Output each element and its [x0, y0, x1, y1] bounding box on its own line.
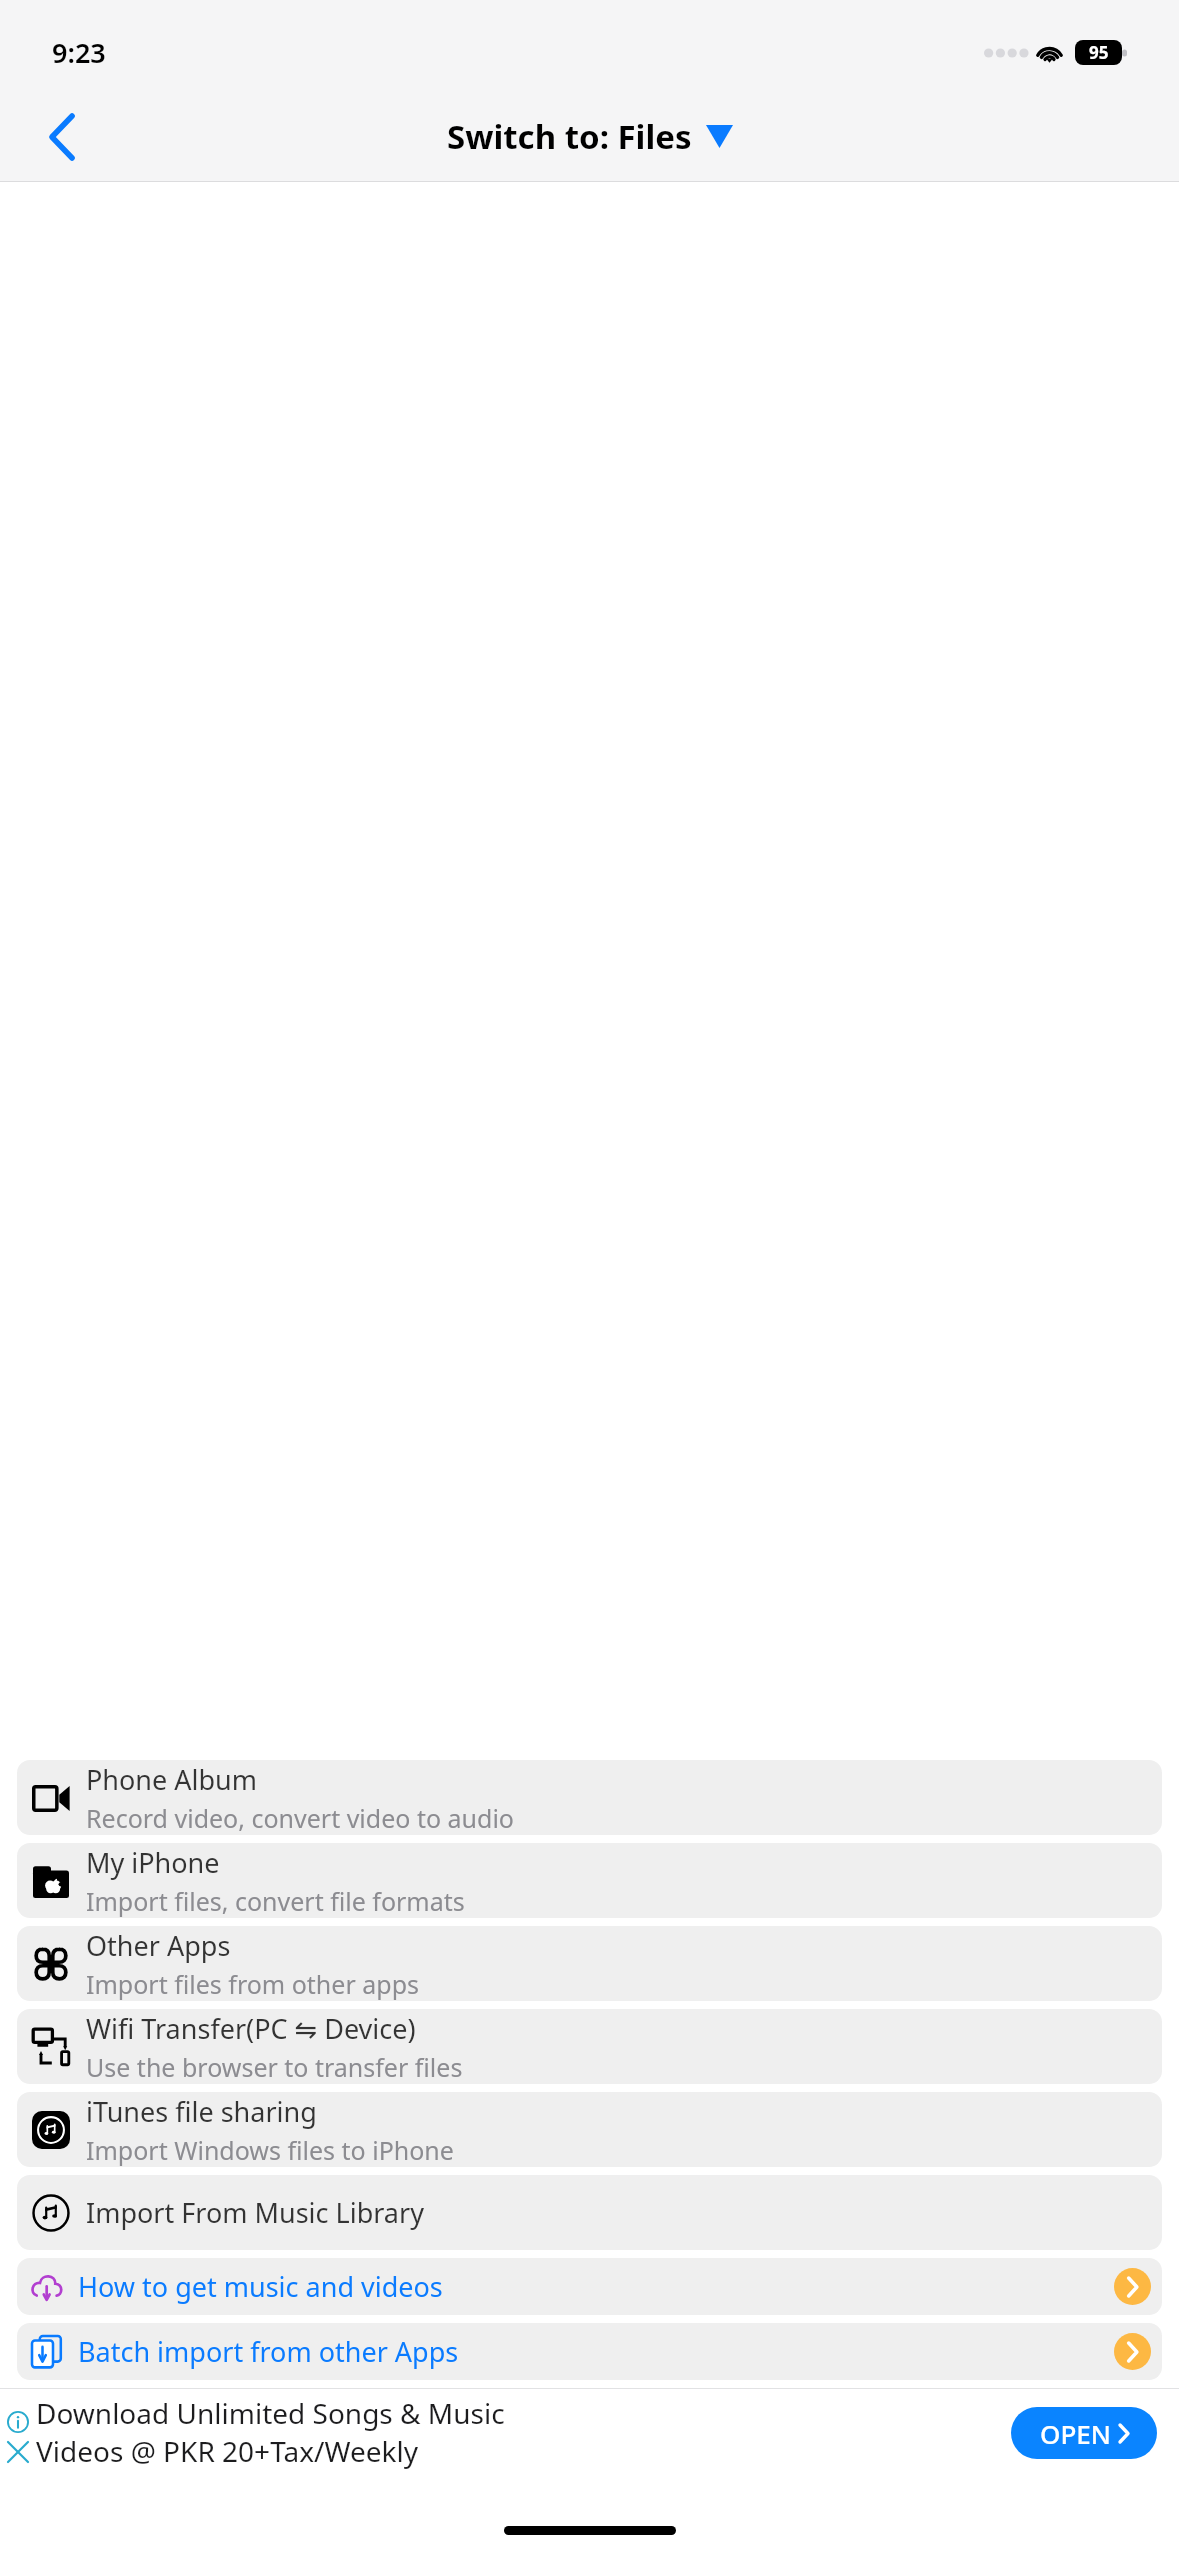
button[interactable]: Ad information: [5, 2409, 31, 2435]
button[interactable]: Ad information: [0, 2388, 1179, 2486]
staticText: Import files, convert file formats: [86, 1884, 465, 1918]
staticText: 9:23: [52, 34, 106, 71]
staticText: My iPhone: [86, 1844, 220, 1881]
staticText: 95: [1089, 41, 1109, 64]
staticText: Import Windows files to iPhone: [86, 2133, 454, 2167]
button[interactable]: iTunes file sharing: [17, 2092, 1162, 2167]
staticText: OPEN: [1040, 2416, 1111, 2451]
staticText: Use the browser to transfer files: [86, 2050, 463, 2084]
button[interactable]: Import From Music Library: [17, 2175, 1162, 2250]
staticText: How to get music and videos: [78, 2268, 1114, 2305]
staticText: Import files from other apps: [86, 1967, 419, 2001]
button[interactable]: Close ad: [5, 2439, 31, 2465]
button[interactable]: How to get music and videos: [17, 2258, 1162, 2315]
staticText: Switch to: Files: [447, 114, 692, 159]
button[interactable]: Other Apps: [17, 1926, 1162, 2001]
staticText: Download Unlimited Songs & Music: [36, 2394, 505, 2432]
staticText: Other Apps: [86, 1927, 231, 1964]
button[interactable]: Batch import from other Apps: [17, 2323, 1162, 2380]
button[interactable]: My iPhone: [17, 1843, 1162, 1918]
staticText: Wifi Transfer(PC ⇋ Device): [86, 2010, 416, 2047]
staticText: Import From Music Library: [86, 2194, 424, 2231]
button[interactable]: Back: [26, 101, 98, 173]
staticText: iTunes file sharing: [86, 2093, 317, 2130]
button[interactable]: OPEN: [1011, 2407, 1157, 2459]
staticText: Record video, convert video to audio: [86, 1801, 514, 1835]
button[interactable]: Phone Album: [17, 1760, 1162, 1835]
staticText: Batch import from other Apps: [78, 2333, 1114, 2370]
staticText: Phone Album: [86, 1761, 258, 1798]
staticText: Videos @ PKR 20+Tax/Weekly: [36, 2432, 418, 2470]
button[interactable]: Wifi Transfer(PC ⇋ Device): [17, 2009, 1162, 2084]
button[interactable]: Switch to: Files: [447, 114, 733, 159]
